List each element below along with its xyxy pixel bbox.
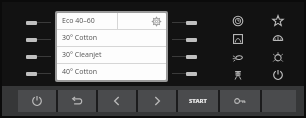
other: Right select 4 — [186, 72, 197, 76]
other: Left select 1 — [26, 21, 37, 25]
button[interactable]: Right select 2 — [172, 31, 197, 48]
button[interactable]: Balance — [267, 30, 289, 48]
button[interactable]: Left select 1 — [26, 14, 51, 31]
button[interactable]: Timer — [227, 12, 249, 30]
button[interactable]: 30° Cleanjet — [57, 47, 166, 63]
button[interactable]: Eco 40–60 — [57, 13, 166, 29]
button[interactable]: Back — [58, 90, 96, 112]
other: Left select 4 — [26, 72, 37, 76]
button[interactable]: START — [178, 90, 218, 112]
button[interactable]: Left select 2 — [26, 31, 51, 48]
button[interactable]: Bug — [267, 48, 289, 66]
other: Left select 3 — [26, 55, 37, 59]
staticText: 30° Cleanjet — [62, 50, 102, 60]
button[interactable]: Power — [18, 90, 56, 112]
button[interactable]: 30° Cotton — [57, 30, 166, 46]
button[interactable]: Favourite — [267, 12, 289, 30]
button[interactable]: 40° Cotton — [57, 64, 166, 80]
other: Right select 2 — [186, 38, 197, 42]
button[interactable]: Left select 4 — [26, 65, 51, 82]
other: Right select 1 — [186, 21, 197, 25]
button[interactable]: Spray — [227, 48, 249, 66]
staticText: Eco 40–60 — [62, 16, 95, 26]
button[interactable]: Previous — [98, 90, 136, 112]
button[interactable]: Next — [138, 90, 176, 112]
other: Settings — [152, 17, 161, 26]
button[interactable]: Left select 3 — [26, 48, 51, 65]
button[interactable]: Power — [267, 66, 289, 84]
button[interactable]: Drum — [227, 30, 249, 48]
other: Right select 3 — [186, 55, 197, 59]
button[interactable]: Lock — [220, 90, 260, 112]
button[interactable]: Tap — [227, 66, 249, 84]
button[interactable]: Right select 3 — [172, 48, 197, 65]
staticText: 30° Cotton — [62, 33, 98, 43]
staticText: START — [189, 97, 207, 105]
staticText: 40° Cotton — [62, 67, 98, 77]
button[interactable]: Right select 4 — [172, 65, 197, 82]
button[interactable]: Right select 1 — [172, 14, 197, 31]
other: Left select 2 — [26, 38, 37, 42]
